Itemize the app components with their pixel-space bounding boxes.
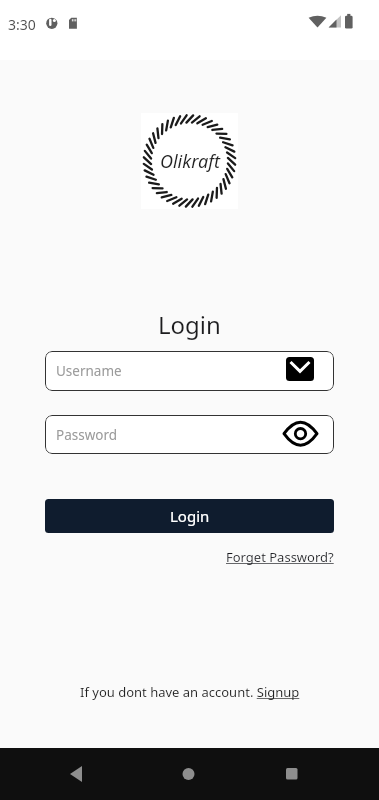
button[interactable] bbox=[56, 758, 96, 790]
button[interactable]: Forget Password? bbox=[226, 548, 334, 566]
staticText: Username bbox=[56, 362, 122, 380]
button[interactable] bbox=[272, 758, 312, 790]
button[interactable]: If you dont have an account. Signup bbox=[80, 683, 300, 701]
button[interactable]: Username bbox=[45, 351, 334, 391]
staticText: Login bbox=[158, 308, 221, 341]
button[interactable] bbox=[169, 758, 209, 790]
button[interactable]: Password bbox=[45, 415, 334, 454]
button[interactable]: Login bbox=[45, 499, 334, 533]
staticText: Olikraft bbox=[160, 149, 220, 174]
staticText: Password bbox=[56, 426, 118, 444]
staticText: Login bbox=[170, 506, 210, 526]
staticText: 3:30 bbox=[8, 15, 36, 34]
